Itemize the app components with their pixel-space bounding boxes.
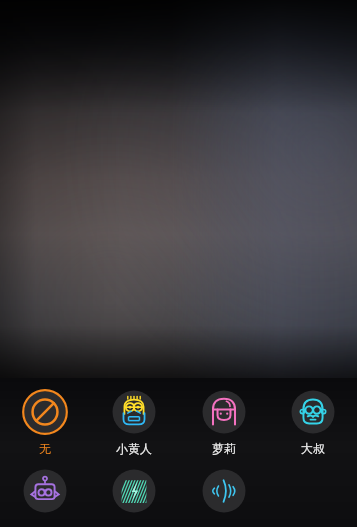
- staticText: 无: [39, 441, 51, 456]
- button[interactable]: 无 None filter: [0, 389, 89, 456]
- button[interactable]: 闪电 Lightning filter: [89, 468, 178, 514]
- button[interactable]: 机器人 Robot filter: [0, 468, 89, 514]
- button[interactable]: 萝莉 Loli filter: [179, 389, 268, 456]
- staticText: 萝莉: [212, 441, 236, 456]
- button[interactable]: 大叔 Uncle filter: [268, 389, 357, 456]
- staticText: 小黄人: [116, 441, 152, 456]
- button[interactable]: 声波 Sound wave filter: [179, 468, 268, 514]
- staticText: 大叔: [301, 441, 325, 456]
- button[interactable]: 小黄人 Minion filter: [89, 389, 178, 456]
